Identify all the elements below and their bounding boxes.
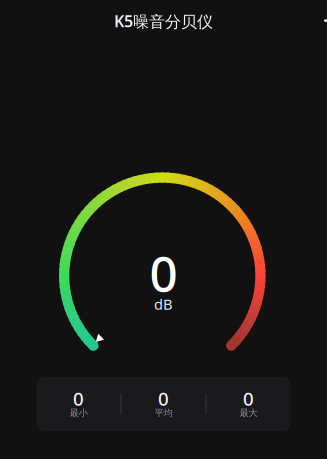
staticText: 0 bbox=[73, 386, 84, 411]
staticText: 0 bbox=[243, 386, 254, 411]
button[interactable]: More bbox=[324, 19, 327, 22]
button[interactable]: 0 bbox=[121, 377, 205, 431]
staticText: 0 bbox=[158, 386, 169, 411]
button[interactable]: 0 bbox=[36, 377, 120, 431]
staticText: dB bbox=[154, 294, 173, 314]
staticText: 最小 bbox=[69, 407, 87, 419]
button[interactable]: 0 bbox=[206, 377, 290, 431]
staticText: 0 bbox=[149, 240, 177, 306]
staticText: 最大 bbox=[239, 407, 257, 419]
button[interactable]: K5噪音分贝仪 bbox=[0, 11, 327, 31]
staticText: 平均 bbox=[154, 407, 172, 419]
staticText: K5噪音分贝仪 bbox=[114, 10, 213, 32]
